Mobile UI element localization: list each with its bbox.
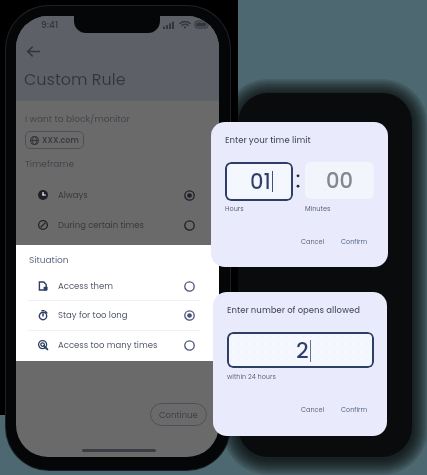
button[interactable]: XXX.com — [25, 131, 84, 149]
staticText: Timeframe — [25, 158, 75, 171]
staticText: 9:41 — [41, 19, 59, 32]
staticText: I want to block/monitor — [25, 113, 130, 126]
staticText: Confirm — [341, 237, 368, 246]
button[interactable]: Continue — [150, 403, 207, 426]
staticText: Access them — [58, 280, 114, 292]
button[interactable]: Stay for too long — [32, 301, 204, 329]
staticText: 2 — [296, 335, 309, 366]
staticText: Cancel — [301, 237, 325, 246]
button[interactable]: Confirm — [337, 233, 372, 250]
button[interactable]: During certain times — [32, 211, 204, 239]
button[interactable]: Confirm — [337, 401, 372, 418]
staticText: Hours — [225, 204, 244, 213]
staticText: Situation — [29, 254, 69, 267]
staticText: Stay for too long — [58, 309, 128, 321]
staticText: Minutes — [305, 204, 331, 213]
button[interactable]: Back — [20, 38, 46, 64]
button[interactable]: Cancel — [297, 233, 329, 250]
button[interactable]: Access too many times — [32, 331, 204, 359]
staticText: Access too many times — [58, 339, 158, 351]
button[interactable]: 2 — [227, 332, 374, 368]
staticText: Continue — [159, 409, 198, 421]
staticText: Custom Rule — [24, 68, 126, 90]
button[interactable]: Always — [32, 181, 204, 209]
staticText: Always — [58, 189, 88, 201]
button[interactable]: Cancel — [297, 401, 329, 418]
staticText: Enter number of opens allowed — [227, 304, 361, 316]
button[interactable]: 01 — [225, 162, 293, 201]
staticText: During certain times — [58, 219, 145, 231]
staticText: 01 — [250, 167, 271, 196]
staticText: within 24 hours — [227, 372, 276, 381]
button[interactable]: 00 — [305, 162, 374, 199]
staticText: Enter your time limit — [225, 134, 311, 146]
button[interactable]: Access them — [32, 272, 204, 300]
staticText: Cancel — [301, 405, 325, 414]
staticText: 00 — [326, 166, 353, 195]
staticText: Confirm — [341, 405, 368, 414]
staticText: XXX.com — [42, 135, 79, 146]
